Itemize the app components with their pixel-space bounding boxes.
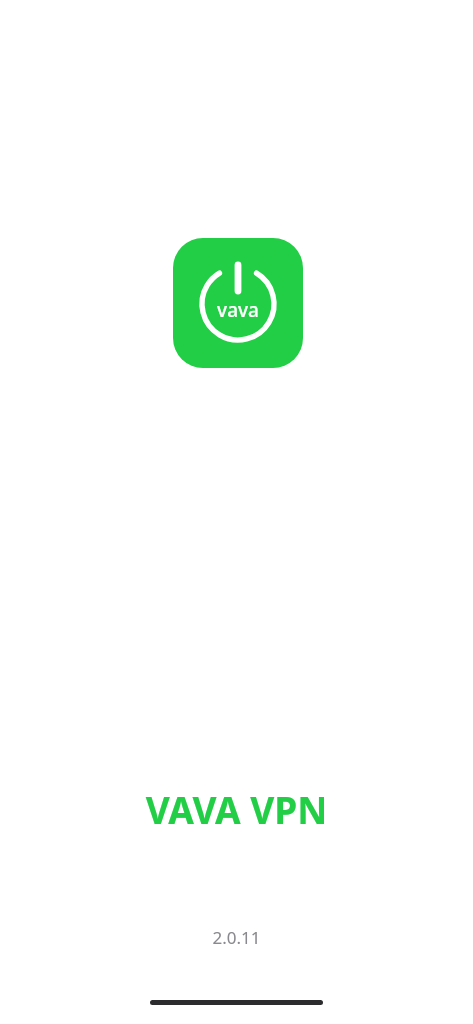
staticText: VAVA VPN — [0, 784, 473, 834]
staticText: 2.0.11 — [0, 926, 473, 949]
staticText: vava — [217, 297, 259, 323]
button[interactable]: VAVA VPN app icon — [173, 238, 303, 368]
